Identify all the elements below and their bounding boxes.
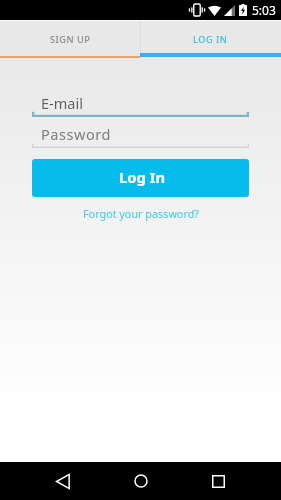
button[interactable]: LOG IN bbox=[140, 21, 281, 58]
button[interactable]: Forgot your password? bbox=[77, 204, 205, 223]
staticText: E-mail bbox=[41, 93, 83, 113]
button[interactable]: Recent apps bbox=[198, 462, 238, 500]
staticText: Forgot your password? bbox=[83, 206, 199, 221]
button[interactable]: E-mail bbox=[32, 93, 249, 117]
staticText: LOG IN bbox=[193, 33, 228, 46]
button[interactable]: Home bbox=[121, 462, 161, 500]
button[interactable]: Back bbox=[43, 462, 83, 500]
staticText: Password bbox=[41, 124, 111, 144]
staticText: 5:03 bbox=[252, 2, 276, 18]
button[interactable]: SIGN UP bbox=[0, 21, 140, 58]
button[interactable]: Log In bbox=[32, 159, 249, 197]
staticText: Log In bbox=[119, 167, 166, 187]
button[interactable]: Password bbox=[32, 124, 249, 148]
staticText: SIGN UP bbox=[50, 33, 91, 46]
